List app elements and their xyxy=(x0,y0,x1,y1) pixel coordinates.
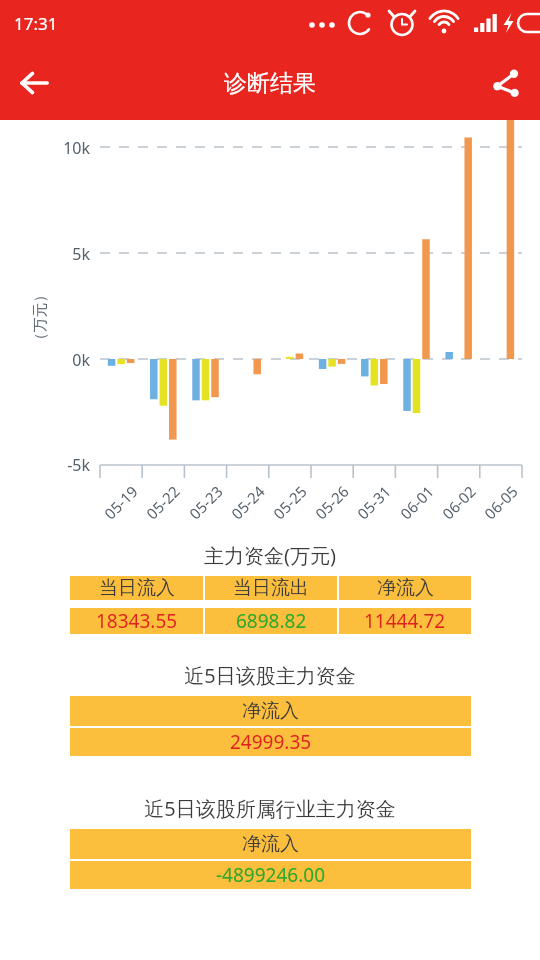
button[interactable]: 当日流入 xyxy=(70,576,203,600)
staticText: 06-05 xyxy=(480,481,522,523)
button[interactable]: Back xyxy=(0,49,68,117)
staticText: 10k xyxy=(38,137,90,159)
staticText: -5k xyxy=(38,454,90,476)
staticText: 05-23 xyxy=(185,481,227,523)
staticText: 24999.35 xyxy=(230,729,312,755)
staticText: -4899246.00 xyxy=(216,862,326,888)
staticText: 05-31 xyxy=(353,481,395,523)
staticText: 净流入 xyxy=(242,699,299,723)
button[interactable]: 11444.72 xyxy=(339,608,471,634)
button[interactable]: 净流入 xyxy=(339,576,471,600)
button[interactable]: 净流入 xyxy=(70,829,471,859)
button[interactable]: 净流入 xyxy=(70,696,471,726)
staticText: 05-22 xyxy=(142,481,184,523)
staticText: 净流入 xyxy=(377,576,434,600)
staticText: 诊断结果 xyxy=(224,69,316,98)
button[interactable]: 6898.82 xyxy=(205,608,337,634)
staticText: 11444.72 xyxy=(364,608,446,634)
staticText: 05-19 xyxy=(100,481,142,523)
staticText: 05-26 xyxy=(311,481,353,523)
button[interactable]: Share xyxy=(472,49,540,117)
staticText: 5k xyxy=(38,243,90,265)
staticText: （万元） xyxy=(30,287,49,347)
staticText: 06-01 xyxy=(396,481,438,523)
staticText: 近5日该股主力资金 xyxy=(0,662,540,689)
staticText: 6898.82 xyxy=(236,608,307,634)
staticText: 06-02 xyxy=(438,481,480,523)
button[interactable]: 24999.35 xyxy=(70,728,471,756)
staticText: 近5日该股所属行业主力资金 xyxy=(0,795,540,822)
button[interactable]: -4899246.00 xyxy=(70,861,471,889)
button[interactable]: 18343.55 xyxy=(70,608,203,634)
staticText: 当日流出 xyxy=(233,576,309,600)
staticText: 17:31 xyxy=(14,12,58,35)
staticText: 净流入 xyxy=(242,832,299,856)
staticText: 05-24 xyxy=(227,481,269,523)
staticText: 05-25 xyxy=(269,481,311,523)
button[interactable]: 当日流出 xyxy=(205,576,337,600)
staticText: 18343.55 xyxy=(96,608,178,634)
staticText: 0k xyxy=(38,349,90,371)
staticText: 当日流入 xyxy=(99,576,175,600)
staticText: 主力资金(万元) xyxy=(0,542,540,569)
